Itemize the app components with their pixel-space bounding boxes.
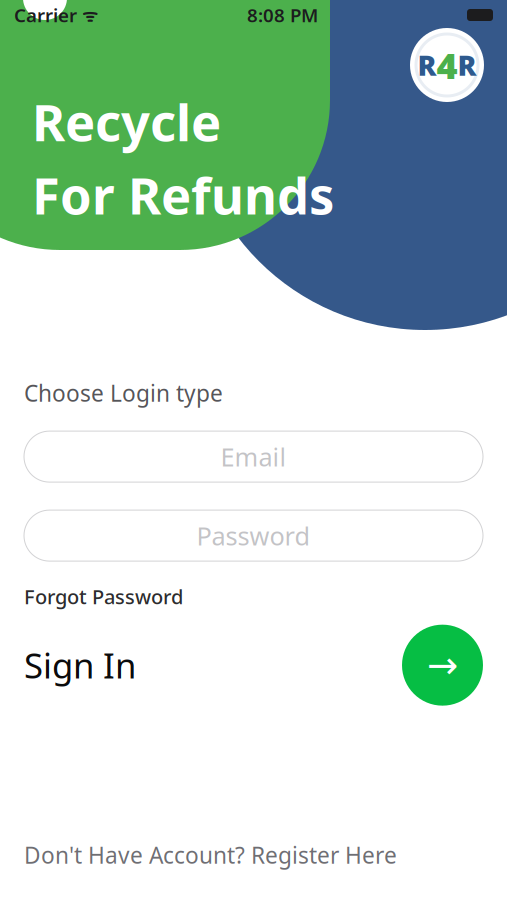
staticText: →	[427, 644, 458, 686]
staticText: ᯤ	[77, 3, 98, 26]
staticText: R	[457, 46, 476, 84]
button[interactable]: Forgot Password	[24, 583, 183, 610]
staticText: For Refunds	[32, 161, 334, 229]
staticText: Choose Login type	[24, 378, 223, 408]
staticText: R	[417, 46, 436, 84]
staticText: Forgot Password	[24, 583, 183, 610]
staticText: 8:08 PM	[247, 3, 318, 27]
staticText: Password	[196, 519, 310, 552]
staticText: Carrier	[14, 3, 77, 27]
staticText: Don't Have Account? Register Here	[24, 840, 397, 870]
button[interactable]: Don't Have Account? Register Here	[24, 840, 397, 870]
staticText: Email	[220, 440, 286, 473]
button[interactable]: Email	[24, 431, 483, 482]
staticText: Recycle	[32, 88, 221, 155]
staticText: Sign In	[24, 642, 136, 688]
button[interactable]: Sign In	[402, 625, 483, 706]
staticText: 4	[436, 41, 457, 89]
button[interactable]: Password	[24, 510, 483, 561]
